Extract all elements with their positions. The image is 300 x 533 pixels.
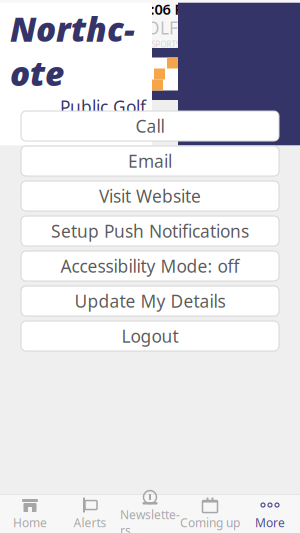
button[interactable]: Coming up	[180, 495, 240, 533]
staticText: Accessibility Mode: off	[60, 254, 239, 277]
staticText: Alerts	[73, 514, 106, 530]
button[interactable]: More	[240, 495, 300, 533]
staticText: powered by SPORTSBAG	[104, 39, 195, 50]
staticText: Newsletters	[120, 507, 180, 533]
button[interactable]: Visit Website	[21, 181, 279, 211]
staticText: Home	[13, 514, 47, 530]
button[interactable]: Setup Push Notifications	[21, 216, 279, 246]
staticText: More	[255, 514, 285, 530]
staticText: Visit Website	[99, 184, 201, 207]
button[interactable]: Call	[21, 111, 279, 141]
staticText: Setup Push Notifications	[51, 219, 249, 242]
staticText: Update My Details	[74, 289, 225, 312]
staticText: Public Golf Course	[60, 95, 146, 141]
staticText: 3:06 PM	[142, 0, 197, 19]
staticText: Coming up	[180, 514, 240, 530]
button[interactable]: Menu	[6, 18, 40, 48]
staticText: Email	[128, 149, 172, 172]
button[interactable]: Logout	[21, 321, 279, 351]
button[interactable]: Update My Details	[21, 286, 279, 316]
button[interactable]: Newsletters	[120, 495, 180, 533]
staticText: Call	[135, 114, 164, 137]
staticText: Logout	[121, 324, 178, 347]
button[interactable]: Home	[0, 495, 60, 533]
button[interactable]: Email	[21, 146, 279, 176]
button[interactable]: Alerts	[60, 495, 120, 533]
staticText: Carrier	[8, 0, 55, 19]
staticText: DINT GOLF APP	[86, 16, 214, 39]
button[interactable]: Accessibility Mode: off	[21, 251, 279, 281]
staticText: Northcote	[10, 7, 135, 95]
